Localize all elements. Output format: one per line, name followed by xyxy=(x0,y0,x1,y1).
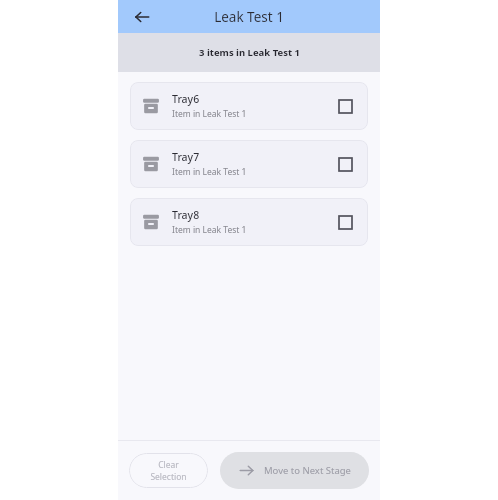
staticText: Tray6 xyxy=(172,92,200,106)
button[interactable]: Select Tray6 xyxy=(334,95,356,117)
button[interactable]: Tray6 xyxy=(130,82,368,130)
button[interactable]: Move to Next Stage xyxy=(220,452,369,489)
staticText: Tray8 xyxy=(172,208,200,222)
button[interactable]: Back xyxy=(128,3,156,31)
staticText: Item in Leak Test 1 xyxy=(172,166,247,178)
button[interactable]: Tray7 xyxy=(130,140,368,188)
staticText: Clear Selection xyxy=(150,459,187,483)
staticText: Item in Leak Test 1 xyxy=(172,224,247,236)
staticText: Tray7 xyxy=(172,150,200,164)
staticText: Move to Next Stage xyxy=(264,464,351,477)
staticText: 3 items in Leak Test 1 xyxy=(199,46,300,59)
button[interactable]: Clear Selection xyxy=(129,453,208,488)
staticText: Leak Test 1 xyxy=(214,8,284,26)
button[interactable]: Tray8 xyxy=(130,198,368,246)
staticText: Item in Leak Test 1 xyxy=(172,108,247,120)
button[interactable]: Select Tray7 xyxy=(334,153,356,175)
button[interactable]: Select Tray8 xyxy=(334,211,356,233)
